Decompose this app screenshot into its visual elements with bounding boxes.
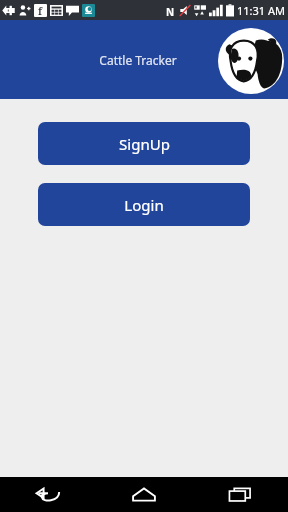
staticText: N — [166, 5, 175, 17]
button[interactable]: Home — [96, 477, 192, 512]
button[interactable]: Recent apps — [192, 477, 288, 512]
other: Cattle Tracker logo — [218, 28, 284, 94]
staticText: Cattle Tracker — [99, 52, 177, 68]
staticText: f — [38, 4, 43, 17]
staticText: SignUp — [119, 134, 170, 154]
staticText: Login — [124, 195, 164, 215]
button[interactable]: Back — [0, 477, 96, 512]
staticText: 11:31 AM — [237, 3, 285, 18]
button[interactable]: SignUp — [38, 122, 250, 165]
button[interactable]: Login — [38, 183, 250, 226]
